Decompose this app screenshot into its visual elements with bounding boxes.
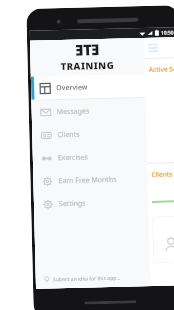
staticText: Earn Free Months <box>58 175 117 186</box>
button[interactable]: Earn Free Months <box>33 167 148 193</box>
staticText: ƎTƎ <box>75 39 99 60</box>
button[interactable]: Clients <box>32 121 146 147</box>
staticText: Messages <box>57 106 90 117</box>
button[interactable]: Messages <box>31 98 146 124</box>
staticText: Clients <box>57 130 80 140</box>
button[interactable]: Open navigation menu <box>146 41 160 55</box>
staticText: Active Sessions <box>149 64 174 74</box>
staticText: Clients Overview <box>151 169 174 179</box>
button[interactable]: Settings <box>34 190 148 216</box>
staticText: Settings <box>59 198 86 209</box>
staticText: Exercises <box>58 152 88 163</box>
staticText: Overview <box>56 82 88 93</box>
staticText: 10:50 <box>161 29 174 37</box>
staticText: TRAINING <box>60 59 115 73</box>
button[interactable]: Exercises <box>33 144 147 170</box>
button[interactable]: Submit an idea for this app... <box>36 268 150 289</box>
button[interactable]: M <box>152 216 174 263</box>
button[interactable]: Overview <box>31 74 145 100</box>
staticText: Submit an idea for this app... <box>53 275 121 283</box>
